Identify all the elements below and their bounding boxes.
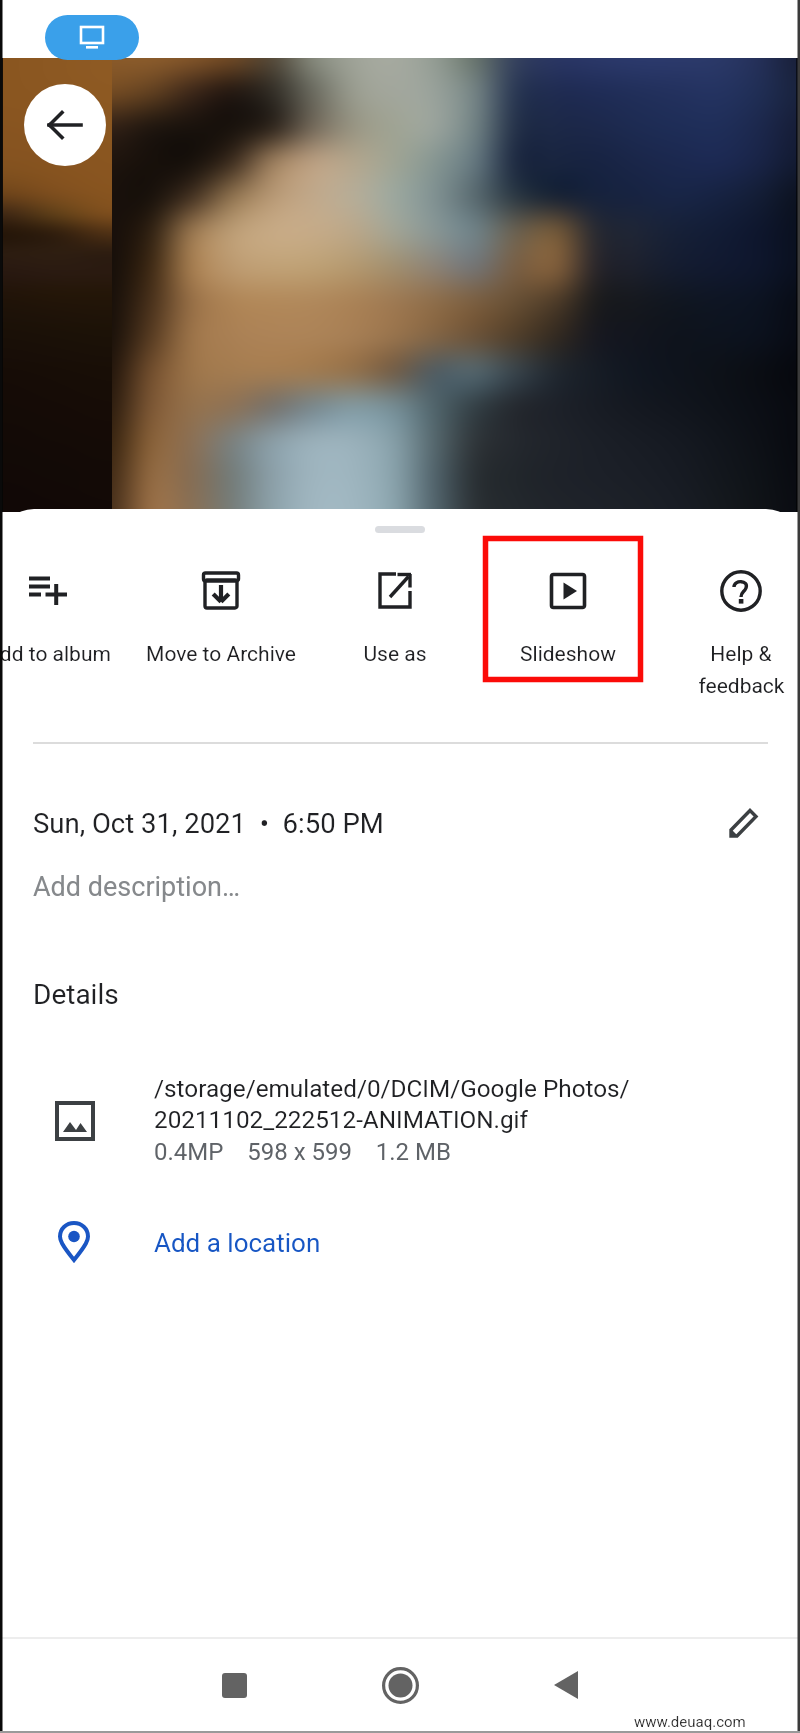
staticText: www.deuaq.com — [634, 1713, 746, 1731]
staticText: Slideshow — [520, 642, 616, 667]
staticText: Help & — [710, 642, 772, 667]
button[interactable]: Cast — [45, 15, 139, 60]
button[interactable]: Sun, Oct 31, 2021 • 6:50 PM — [0, 786, 800, 858]
button[interactable]: Edit — [704, 782, 784, 862]
button[interactable]: Add to album — [0, 551, 134, 701]
button[interactable]: Add description… — [0, 862, 800, 924]
staticText: Sun, Oct 31, 2021 • 6:50 PM — [33, 807, 384, 839]
button[interactable]: Back — [537, 1655, 597, 1715]
staticText: Add description… — [33, 871, 241, 903]
staticText: Details — [33, 978, 119, 1011]
button[interactable]: Add a location — [0, 1212, 800, 1282]
staticText: 0.4MP 598 x 599 1.2 MB — [154, 1138, 451, 1166]
button[interactable]: Back — [24, 84, 106, 166]
button[interactable]: Recents — [204, 1655, 264, 1715]
staticText: Move to Archive — [146, 642, 296, 667]
button[interactable]: Home — [370, 1655, 430, 1715]
staticText: Add to album — [0, 642, 111, 667]
staticText: Use as — [363, 642, 427, 667]
staticText: Add a location — [154, 1228, 321, 1258]
button[interactable]: Use as — [309, 551, 481, 701]
staticText: /storage/emulated/0/DCIM/Google Photos/ — [154, 1074, 630, 1102]
button[interactable]: Slideshow — [482, 551, 654, 701]
button[interactable]: /storage/emulated/0/DCIM/Google Photos/ — [0, 1070, 800, 1180]
staticText: feedback — [698, 674, 785, 699]
staticText: 20211102_222512-ANIMATION.gif — [154, 1105, 528, 1133]
button[interactable]: Move to Archive — [135, 551, 307, 701]
button[interactable]: Help & — [655, 551, 800, 701]
